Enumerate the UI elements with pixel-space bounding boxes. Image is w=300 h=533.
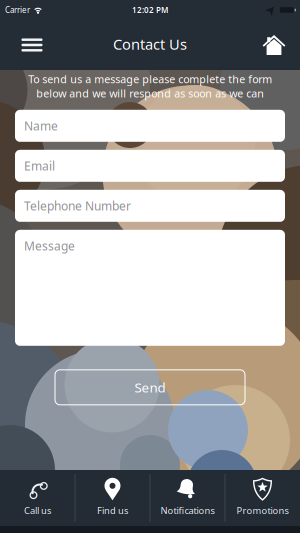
button[interactable]: Notifications [150,471,224,525]
staticText: Message [24,238,75,254]
staticText: Find us [97,504,128,517]
staticText: Promotions [236,504,288,517]
staticText: 12:02 PM [132,5,168,15]
staticText: Send [134,378,165,396]
button[interactable]: Menu [12,23,52,67]
staticText: Name [24,118,58,134]
button[interactable]: Call us [0,471,74,525]
button[interactable]: Email [15,150,285,182]
button[interactable]: Promotions [225,471,299,525]
button[interactable]: Telephone Number [15,190,285,222]
staticText: Contact Us [113,34,187,54]
button[interactable]: Home [254,23,294,67]
staticText: Notifications [160,504,214,517]
staticText: To send us a message please complete the… [28,72,272,100]
staticText: Carrier [5,5,30,15]
button[interactable]: Name [15,110,285,142]
staticText: Email [24,158,55,174]
button[interactable]: Message [15,230,285,346]
staticText: Telephone Number [24,198,131,214]
button[interactable]: Find us [75,471,149,525]
staticText: Call us [24,504,51,517]
button[interactable]: Send [55,370,245,405]
